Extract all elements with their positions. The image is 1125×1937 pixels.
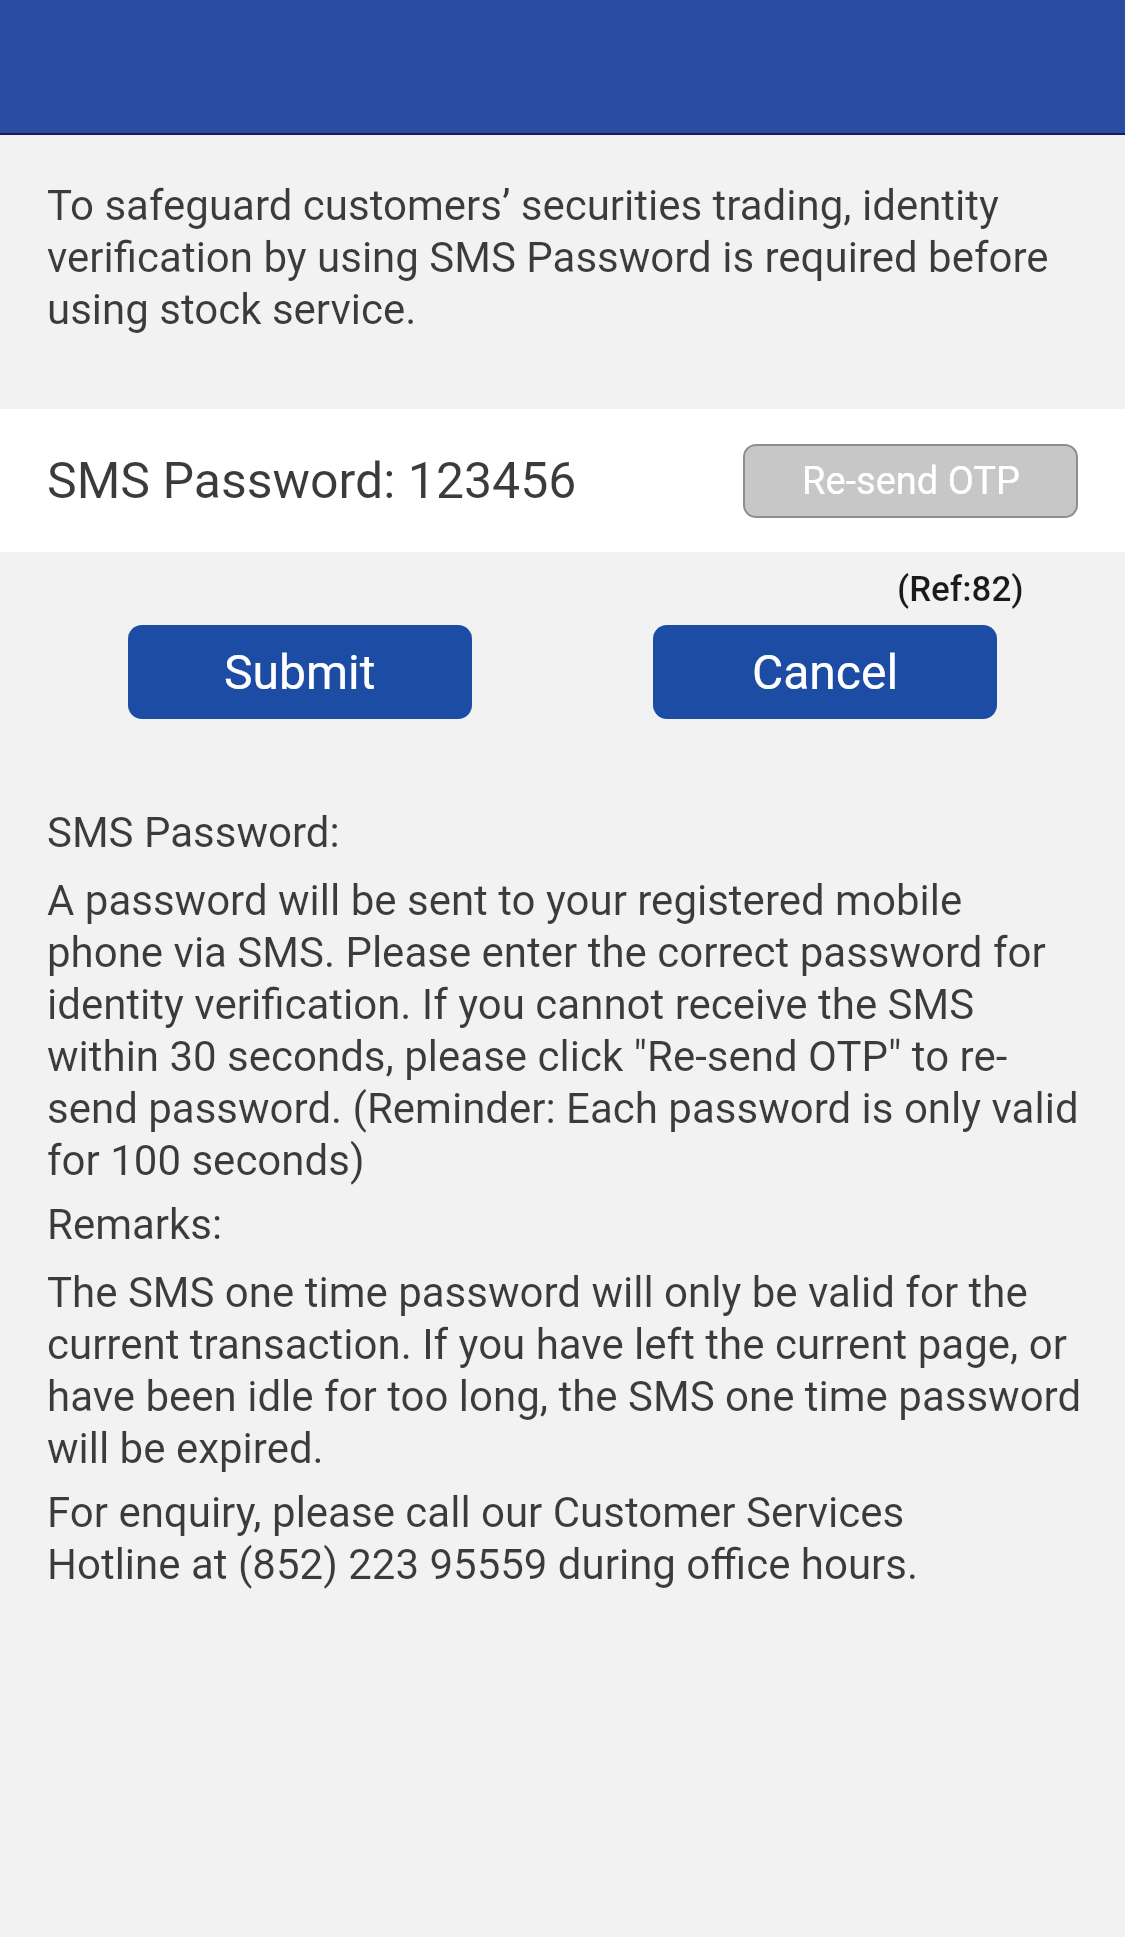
staticText: For enquiry, please call our Customer Se… — [47, 1486, 919, 1590]
staticText: SMS Password: 123456 — [47, 452, 577, 510]
staticText: SMS Password: — [47, 806, 340, 858]
staticText: A password will be sent to your register… — [47, 874, 1079, 1186]
staticText: Submit — [224, 644, 376, 700]
staticText: Re-send OTP — [802, 459, 1020, 504]
button[interactable]: Submit — [128, 625, 472, 719]
staticText: Cancel — [752, 644, 899, 700]
button[interactable]: Cancel — [653, 625, 997, 719]
staticText: (Ref:82) — [897, 569, 1024, 610]
staticText: Remarks: — [47, 1198, 223, 1250]
staticText: To safeguard customers’ securities tradi… — [47, 179, 1125, 335]
button[interactable]: Re-send OTP — [743, 444, 1078, 518]
staticText: The SMS one time password will only be v… — [47, 1266, 1082, 1474]
